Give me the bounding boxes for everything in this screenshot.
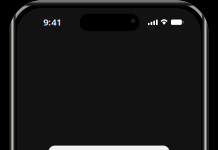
staticText: 9:41: [43, 16, 61, 28]
